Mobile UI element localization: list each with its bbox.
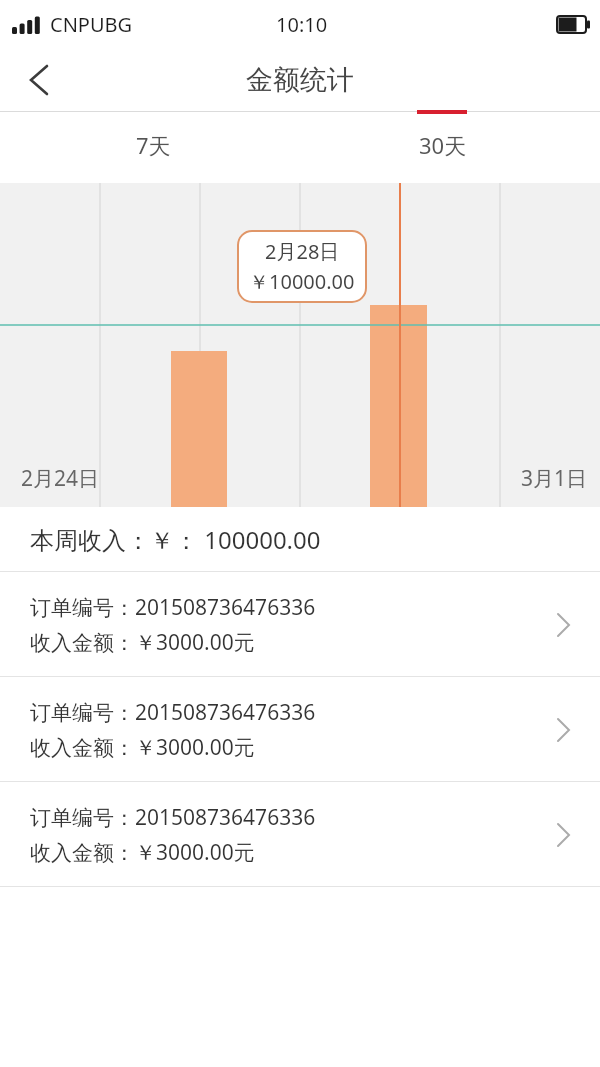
staticText: 订单编号：201508736476336 bbox=[30, 803, 316, 832]
staticText: 30天 bbox=[419, 130, 467, 160]
staticText: 金额统计 bbox=[246, 63, 354, 97]
button[interactable]: 订单编号：201508736476336 bbox=[0, 677, 600, 782]
staticText: 2月24日 bbox=[21, 464, 100, 493]
staticText: 10:10 bbox=[276, 11, 328, 38]
staticText: 本周收入：￥： 100000.00 bbox=[30, 523, 321, 556]
staticText: CNPUBG bbox=[50, 11, 133, 38]
staticText: 收入金额：￥3000.00元 bbox=[30, 628, 255, 657]
staticText: 订单编号：201508736476336 bbox=[30, 593, 316, 622]
staticText: 收入金额：￥3000.00元 bbox=[30, 733, 255, 762]
button[interactable]: 30天 bbox=[300, 112, 600, 183]
staticText: 收入金额：￥3000.00元 bbox=[30, 838, 255, 867]
staticText: 7天 bbox=[136, 130, 171, 160]
staticText: 3月1日 bbox=[521, 464, 588, 493]
staticText: 订单编号：201508736476336 bbox=[30, 698, 316, 727]
button[interactable]: 订单编号：201508736476336 bbox=[0, 782, 600, 887]
staticText: 2月28日 bbox=[265, 238, 340, 265]
staticText: ￥10000.00 bbox=[249, 268, 355, 295]
button[interactable] bbox=[0, 48, 56, 112]
button[interactable]: 订单编号：201508736476336 bbox=[0, 572, 600, 677]
button[interactable]: 7天 bbox=[0, 112, 300, 183]
